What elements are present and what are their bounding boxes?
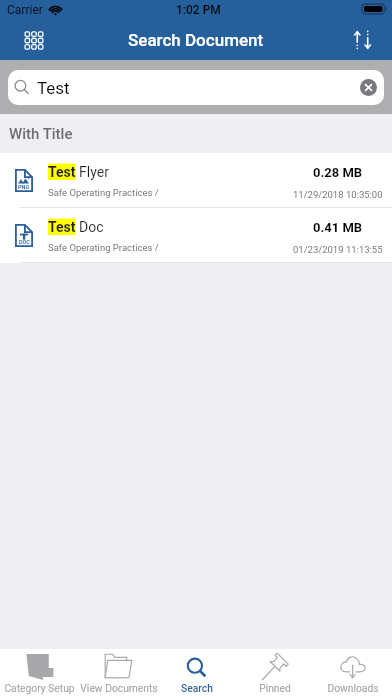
staticText: Category Setup	[4, 682, 75, 694]
staticText: Downloads	[327, 682, 379, 694]
staticText: With Title	[9, 125, 73, 143]
button[interactable]: Grid menu	[16, 22, 52, 58]
button[interactable]: Sort	[344, 22, 380, 58]
button[interactable]: Search	[158, 649, 236, 696]
staticText: DOC	[19, 239, 30, 245]
staticText: Carrier	[7, 3, 43, 17]
staticText: Safe Operating Practices /	[48, 187, 159, 198]
button[interactable]: Clear search	[360, 79, 377, 96]
staticText: Pinned	[259, 682, 291, 694]
staticText: 1:02 PM	[176, 3, 221, 17]
button[interactable]: PNG	[0, 153, 392, 208]
staticText: Test Doc	[48, 219, 104, 235]
button[interactable]: Pinned	[236, 649, 314, 696]
staticText: Safe Operating Practices /	[48, 242, 159, 253]
button[interactable]: DOC	[0, 208, 392, 263]
staticText: Test	[37, 78, 70, 98]
staticText: View Documents	[80, 682, 158, 694]
staticText: Search Document	[128, 30, 264, 50]
button[interactable]: Category Setup	[0, 649, 79, 696]
staticText: Search	[181, 682, 213, 694]
button[interactable]: View Documents	[79, 649, 158, 696]
staticText: 11/29/2018 10:35:00	[293, 189, 383, 200]
staticText: 0.28 MB	[313, 165, 363, 180]
staticText: 01/23/2019 11:13:55	[293, 244, 383, 255]
staticText: 0.41 MB	[313, 220, 363, 235]
button[interactable]: Downloads	[314, 649, 392, 696]
button[interactable]: Test	[8, 70, 384, 105]
staticText: PNG	[18, 184, 30, 190]
staticText: Test Flyer	[48, 164, 109, 180]
